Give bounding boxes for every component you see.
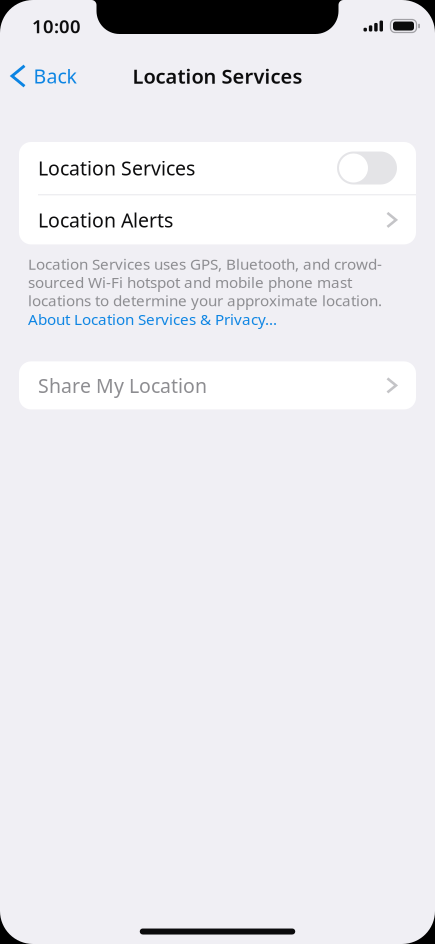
staticText: Back: [33, 63, 76, 89]
staticText: Location Services uses GPS, Bluetooth, a…: [28, 253, 382, 311]
staticText: 10:00: [32, 13, 81, 39]
staticText: Location Services: [38, 155, 195, 181]
button[interactable]: Back: [3, 56, 85, 96]
staticText: Location Alerts: [38, 207, 173, 233]
button[interactable]: Share My Location: [19, 361, 416, 409]
button[interactable]: About Location Services & Privacy...: [28, 309, 411, 329]
button[interactable]: Location Alerts: [19, 195, 416, 244]
button[interactable]: Location Services: [19, 142, 416, 194]
staticText: About Location Services & Privacy...: [28, 309, 277, 329]
staticText: Location Services: [132, 62, 302, 90]
staticText: Share My Location: [38, 372, 207, 399]
